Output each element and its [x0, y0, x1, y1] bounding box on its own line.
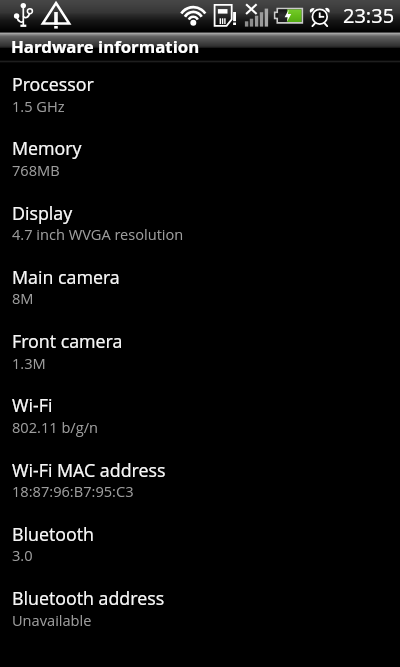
staticText: Bluetooth address — [12, 586, 165, 610]
staticText: Processor — [12, 72, 94, 96]
button[interactable] — [0, 317, 400, 381]
staticText: Hardware information — [11, 35, 200, 58]
other: Alarm set — [309, 5, 331, 28]
button[interactable] — [0, 189, 400, 253]
staticText: 3.0 — [12, 545, 33, 565]
button[interactable] — [0, 574, 400, 638]
staticText: Main camera — [12, 265, 120, 289]
other: SD card problem — [213, 4, 237, 27]
staticText: Bluetooth — [12, 522, 94, 546]
staticText: 4.7 inch WVGA resolution — [12, 224, 184, 244]
staticText: 23:35 — [343, 2, 395, 29]
button[interactable] — [0, 381, 400, 445]
staticText: Display — [12, 201, 73, 225]
staticText: 802.11 b/g/n — [12, 417, 99, 437]
button[interactable] — [0, 124, 400, 188]
staticText: Unavailable — [12, 610, 92, 630]
staticText: 8M — [12, 288, 34, 308]
staticText: 1.3M — [12, 353, 46, 373]
other: Warning — [42, 2, 70, 29]
button[interactable] — [0, 60, 400, 124]
button[interactable] — [0, 510, 400, 574]
staticText: Front camera — [12, 329, 123, 353]
staticText: Memory — [12, 136, 82, 160]
button[interactable] — [0, 253, 400, 317]
other: USB connected — [13, 2, 34, 28]
other: Wi-Fi connected — [179, 4, 208, 26]
other: Battery charging — [274, 8, 303, 24]
staticText: 768MB — [12, 160, 60, 180]
staticText: Wi-Fi MAC address — [12, 458, 166, 482]
staticText: 18:87:96:B7:95:C3 — [12, 481, 134, 501]
button[interactable] — [0, 446, 400, 510]
staticText: 1.5 GHz — [12, 96, 65, 116]
other: No mobile signal — [244, 4, 269, 27]
staticText: Wi-Fi — [12, 393, 53, 417]
